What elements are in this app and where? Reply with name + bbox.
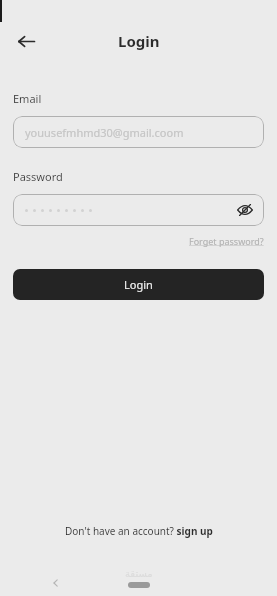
button[interactable]: Show password — [233, 198, 257, 222]
staticText: Password — [13, 169, 63, 184]
button[interactable]: Home — [128, 582, 150, 588]
staticText: youusefmhmd30@gmail.coom — [25, 125, 184, 140]
staticText: Forget password? — [189, 235, 264, 247]
staticText: Don't have an account? sign up — [65, 524, 213, 538]
button[interactable]: youusefmhmd30@gmail.coom — [13, 116, 264, 148]
button[interactable]: Login — [13, 269, 264, 300]
button[interactable]: System back — [46, 573, 66, 593]
button[interactable]: Forget password? — [189, 235, 264, 247]
button[interactable]: Don't have an account? sign up — [59, 522, 219, 540]
staticText: Login — [118, 31, 160, 51]
button[interactable]: Show password — [13, 194, 264, 226]
staticText: مستقة — [125, 568, 153, 580]
button[interactable]: Back — [13, 28, 39, 54]
staticText: Login — [124, 277, 153, 292]
staticText: Email — [13, 91, 42, 106]
